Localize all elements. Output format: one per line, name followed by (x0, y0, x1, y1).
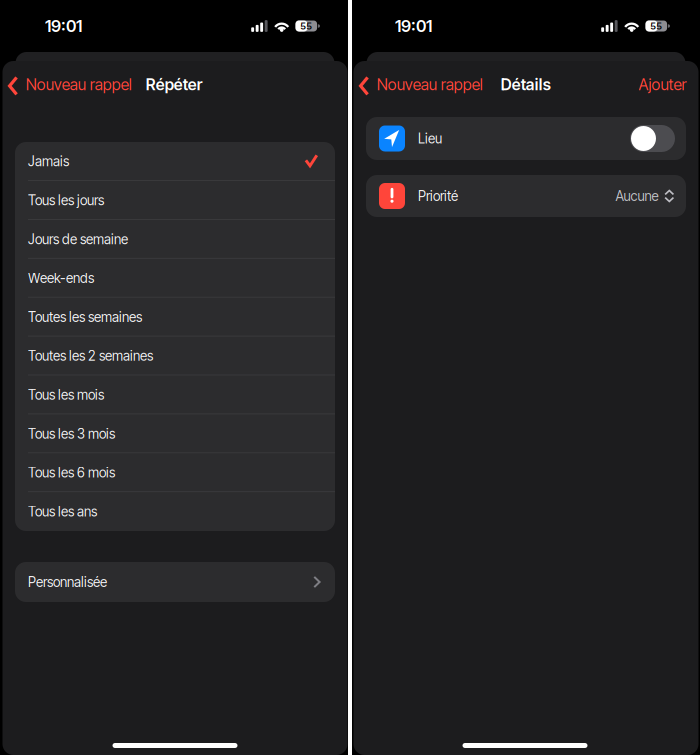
staticText: Aucune (616, 188, 659, 204)
staticText: Jamais (28, 153, 69, 170)
button[interactable]: Tous les mois (15, 375, 335, 414)
staticText: 55 (300, 20, 312, 32)
button[interactable]: Jours de semaine (15, 220, 335, 259)
staticText: Week-ends (28, 270, 94, 286)
staticText: Tous les 6 mois (28, 464, 115, 481)
button[interactable]: Nouveau rappel (2, 61, 136, 108)
staticText: Lieu (418, 130, 442, 147)
staticText: Personnalisée (28, 574, 107, 590)
button[interactable]: Priorité (366, 175, 686, 217)
staticText: Ajouter (638, 75, 686, 94)
staticText: 55 (650, 20, 662, 32)
staticText: Toutes les 2 semaines (28, 348, 153, 364)
staticText: Tous les 3 mois (28, 426, 115, 442)
staticText: Nouveau rappel (377, 75, 483, 94)
staticText: Tous les jours (28, 192, 104, 208)
staticText: Tous les mois (28, 387, 104, 403)
button[interactable]: Ajouter (630, 61, 698, 108)
staticText: Priorité (418, 188, 458, 204)
button[interactable]: Personnalisée (15, 562, 335, 602)
staticText: 19:01 (395, 16, 432, 36)
staticText: Nouveau rappel (26, 75, 132, 94)
button[interactable]: Lieu (366, 117, 686, 160)
button[interactable]: Toutes les 2 semaines (15, 336, 335, 375)
button[interactable]: Tous les 3 mois (15, 414, 335, 453)
button[interactable]: Week-ends (15, 259, 335, 298)
button[interactable]: Tous les jours (15, 181, 335, 220)
staticText: Jours de semaine (28, 231, 128, 247)
staticText: 19:01 (45, 16, 82, 36)
staticText: Toutes les semaines (28, 309, 142, 325)
button[interactable]: Toutes les semaines (15, 298, 335, 336)
staticText: Répéter (146, 75, 203, 94)
button[interactable]: Tous les 6 mois (15, 453, 335, 492)
staticText: Détails (501, 75, 551, 94)
staticText: Tous les ans (28, 503, 97, 520)
button[interactable]: Nouveau rappel (353, 61, 487, 108)
button[interactable]: Jamais (15, 142, 335, 181)
button[interactable]: Tous les ans (15, 492, 335, 531)
